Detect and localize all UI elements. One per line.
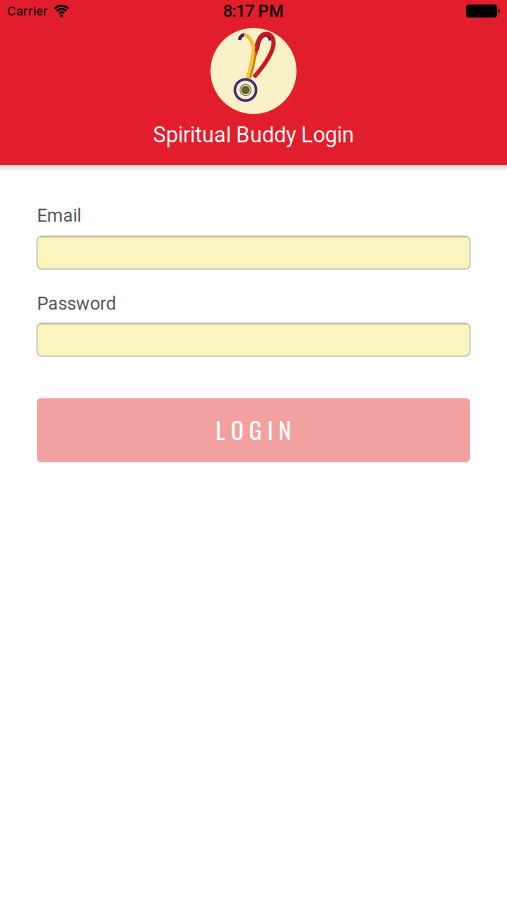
button[interactable]: LOGIN [37,398,470,462]
staticText: L [215,411,225,447]
staticText: Password [37,293,116,314]
staticText: Carrier [7,3,48,19]
staticText: Email [37,205,81,226]
staticText: O [231,411,244,447]
staticText: 8:17 PM [223,1,284,21]
staticText: G [249,411,262,447]
staticText: Spiritual Buddy Login [153,122,354,147]
staticText: I [267,411,273,447]
button[interactable]: Password [37,323,470,356]
staticText: N [279,411,292,447]
button[interactable]: Email [37,236,470,269]
